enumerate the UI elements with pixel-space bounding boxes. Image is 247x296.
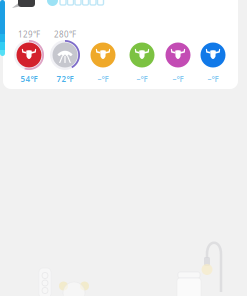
staticText: 72°F — [56, 74, 73, 84]
button[interactable]: –°F — [123, 29, 161, 85]
staticText: –°F — [136, 74, 147, 84]
button[interactable]: –°F — [159, 29, 197, 85]
button[interactable]: –°F — [194, 29, 232, 85]
button[interactable]: 129°F — [10, 29, 48, 85]
staticText: –°F — [172, 74, 183, 84]
button[interactable]: 280°F — [46, 29, 84, 85]
staticText: 280°F — [54, 29, 76, 40]
button[interactable]: –°F — [84, 29, 122, 85]
staticText: 129°F — [18, 29, 40, 40]
staticText: 54°F — [20, 74, 37, 84]
staticText: –°F — [207, 74, 218, 84]
staticText: –°F — [97, 74, 108, 84]
